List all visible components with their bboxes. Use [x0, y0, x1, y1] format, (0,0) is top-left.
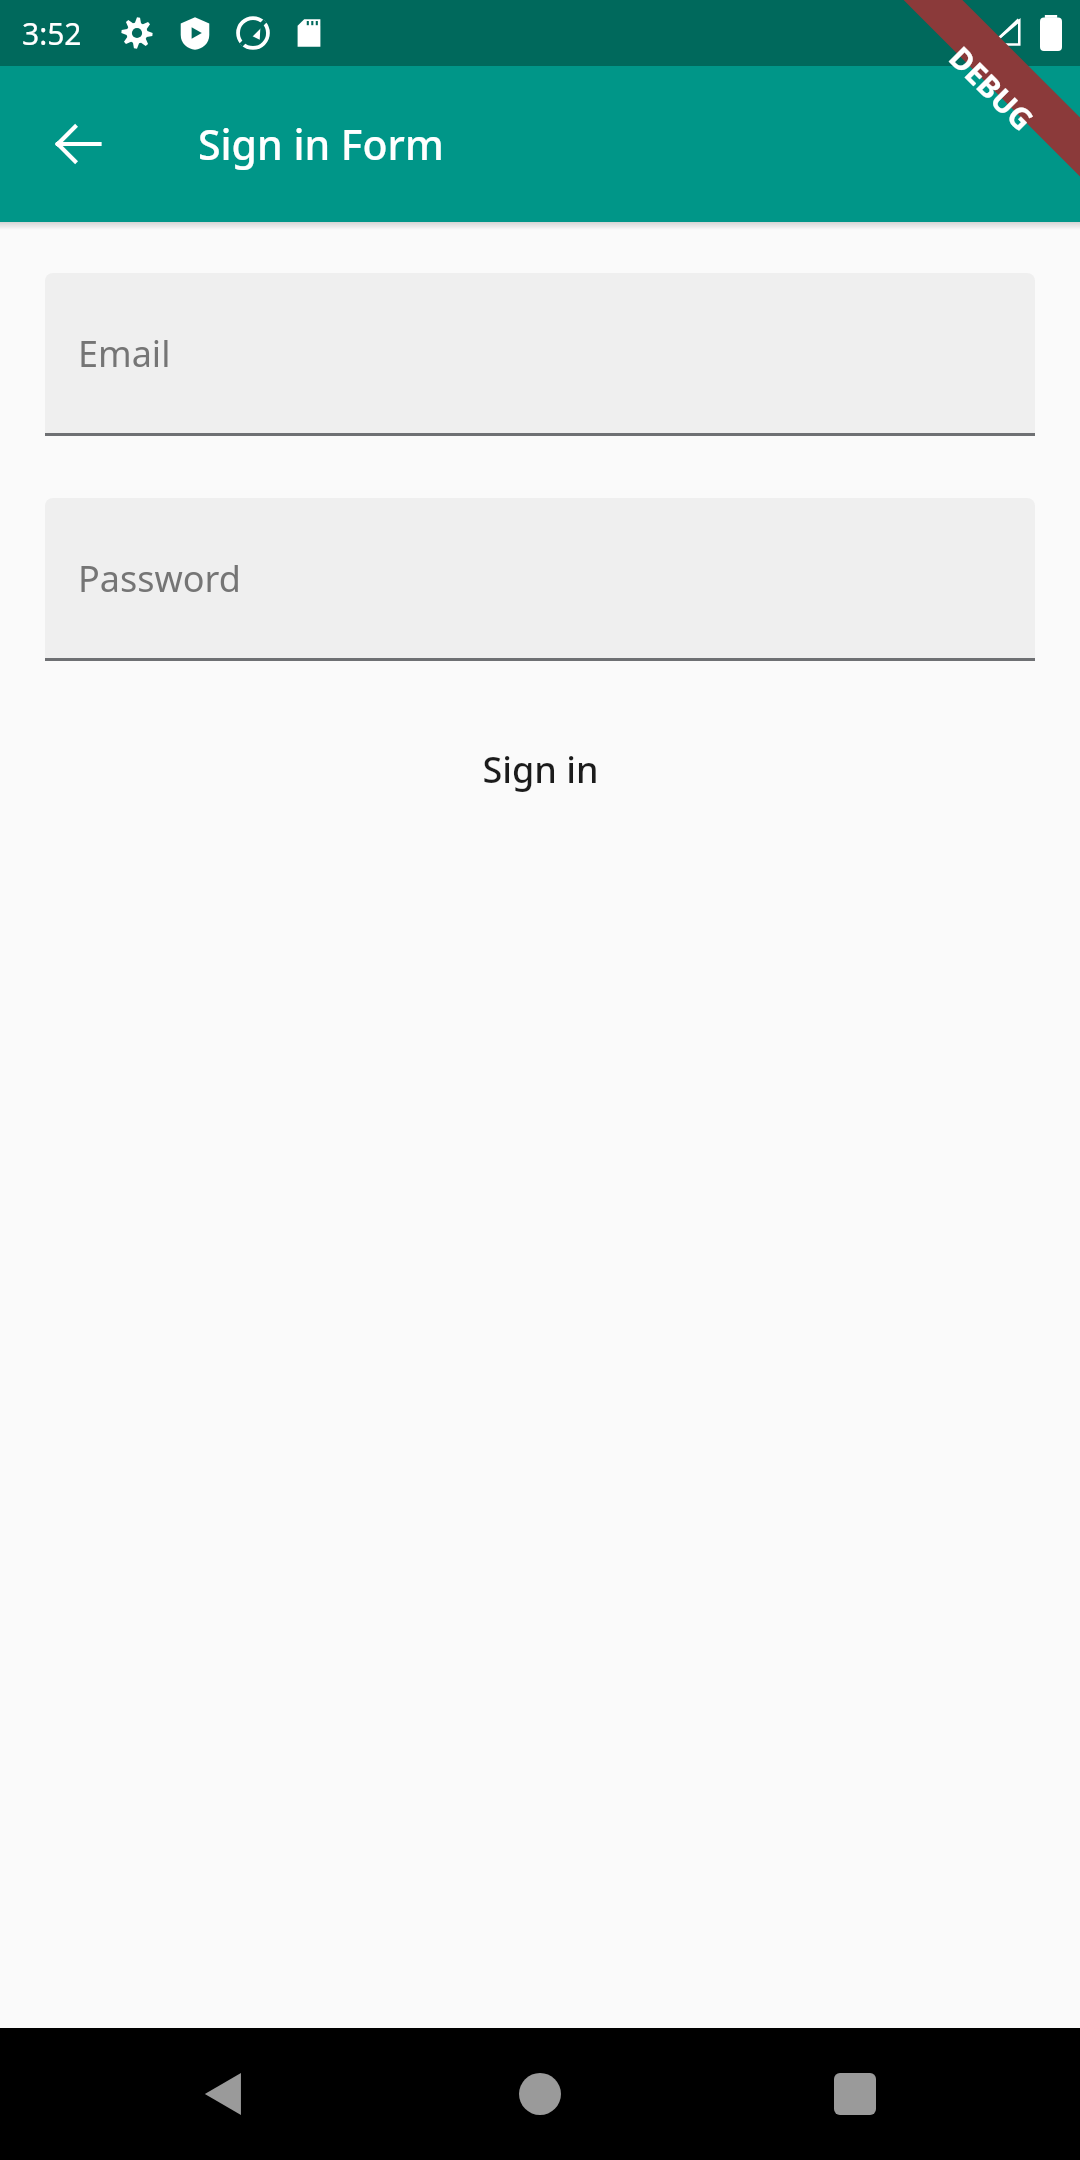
staticText: Email	[78, 329, 171, 378]
button[interactable]: Recent apps	[795, 2034, 915, 2154]
staticText: Sign in	[482, 745, 599, 794]
button[interactable]: Back	[165, 2034, 285, 2154]
button[interactable]: Home	[480, 2034, 600, 2154]
button[interactable]: Password	[45, 498, 1035, 661]
staticText: Sign in Form	[198, 116, 444, 172]
button[interactable]: Sign in	[460, 731, 621, 808]
staticText: 3:52	[22, 13, 82, 54]
button[interactable]: Email	[45, 273, 1035, 436]
staticText: DEBUG	[941, 37, 1043, 140]
staticText: Password	[78, 554, 241, 603]
button[interactable]: Back	[22, 88, 134, 200]
